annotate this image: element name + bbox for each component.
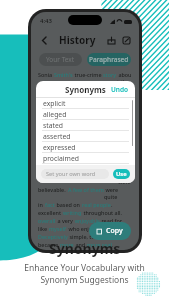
staticText: snapper bbox=[61, 86, 83, 93]
staticText: Undo bbox=[111, 85, 129, 94]
staticText: explicit bbox=[43, 99, 66, 108]
staticText: throughout all. bbox=[82, 209, 123, 216]
staticText: Paraphrased bbox=[89, 55, 129, 64]
staticText: A few of them bbox=[68, 186, 104, 193]
button[interactable]: Back bbox=[38, 34, 50, 46]
staticText: , a large turtle species bbox=[83, 86, 132, 100]
staticText: Copy bbox=[106, 226, 123, 236]
button[interactable]: expressed bbox=[36, 142, 135, 153]
staticText: hunted bbox=[122, 109, 132, 130]
staticText: It was bbox=[57, 147, 73, 154]
staticText: simple, the bbox=[68, 163, 100, 170]
staticText: like bbox=[38, 225, 49, 232]
staticText: simple, the bbox=[68, 233, 100, 240]
button[interactable]: Use bbox=[113, 169, 130, 179]
staticText: Interesting bbox=[38, 155, 67, 162]
staticText: History bbox=[59, 33, 96, 47]
staticText: Times. bbox=[38, 147, 57, 154]
staticText: Deceptively bbox=[38, 233, 68, 240]
staticText: compelling bbox=[38, 171, 67, 178]
button[interactable]: alleged bbox=[36, 109, 135, 120]
staticText: more real bbox=[87, 241, 112, 248]
staticText: a very bbox=[56, 217, 75, 224]
button[interactable]: Export bbox=[105, 34, 117, 46]
staticText: an interesting read. bbox=[73, 147, 125, 154]
staticText: Deceptively bbox=[38, 163, 68, 170]
staticText: alleged bbox=[43, 110, 67, 119]
staticText: Enhance Your Vocabulary with Synonym Sug… bbox=[24, 262, 145, 286]
staticText: based on bbox=[55, 201, 82, 208]
staticText: and the bbox=[67, 171, 90, 178]
staticText: . bbox=[111, 201, 113, 208]
staticText: in bbox=[38, 201, 45, 208]
button[interactable]: Share bbox=[120, 34, 132, 46]
staticText: became bbox=[38, 241, 60, 248]
staticText: proclaimed bbox=[43, 154, 79, 163]
staticText: who enjoys this genre. bbox=[67, 225, 127, 232]
button[interactable]: stated bbox=[36, 120, 135, 131]
staticText: more bbox=[60, 241, 74, 248]
staticText: Smith's bbox=[54, 71, 73, 78]
button[interactable]: Undo bbox=[111, 85, 129, 94]
staticText: . bbox=[112, 241, 114, 248]
staticText: myself bbox=[49, 225, 67, 232]
staticText: was published bbox=[50, 139, 87, 146]
staticText: were bbox=[118, 171, 132, 185]
staticText: real people bbox=[82, 201, 111, 208]
staticText: Set your own word bbox=[46, 170, 96, 178]
button[interactable]: explicit bbox=[36, 98, 135, 109]
staticText: expressed bbox=[43, 143, 76, 152]
button[interactable]: asserted bbox=[36, 131, 135, 142]
staticText: that bbox=[38, 139, 50, 146]
staticText: enjoyable bbox=[75, 217, 100, 224]
staticText: were quite bbox=[104, 186, 132, 200]
staticText: Sonia bbox=[38, 71, 54, 78]
button[interactable]: Paraphrased bbox=[87, 53, 131, 66]
staticText: was bbox=[114, 163, 126, 170]
staticText: about the bbox=[117, 71, 132, 85]
staticText: Use bbox=[116, 170, 127, 178]
button[interactable]: Your Text bbox=[39, 53, 82, 66]
staticText: was the subject of bbox=[52, 131, 102, 138]
staticText: true-crime bbox=[73, 71, 103, 78]
staticText: read for bbox=[100, 217, 122, 224]
staticText: found in the southeast bbox=[38, 101, 98, 108]
staticText: excellent bbox=[38, 209, 63, 216]
button[interactable]: Copy bbox=[89, 222, 131, 240]
staticText: Your Text bbox=[46, 55, 75, 64]
staticText: that bbox=[67, 155, 81, 162]
staticText: and bbox=[74, 241, 87, 248]
staticText: Synonyms bbox=[65, 84, 106, 95]
staticText: asserted bbox=[43, 132, 71, 141]
staticText: them bbox=[38, 131, 52, 138]
staticText: fact bbox=[45, 201, 55, 208]
button[interactable]: proclaimed bbox=[36, 153, 135, 164]
staticText: overall bbox=[38, 217, 56, 224]
staticText: story bbox=[103, 71, 117, 78]
staticText: believable. bbox=[38, 186, 68, 193]
staticText: Louisiana family of hunters who bbox=[38, 109, 122, 116]
staticText: story bbox=[100, 163, 114, 170]
staticText: 4:43 bbox=[40, 17, 52, 25]
staticText: characters bbox=[90, 171, 118, 178]
staticText: writing bbox=[63, 209, 82, 216]
staticText: characters bbox=[100, 233, 128, 240]
button[interactable]: Set your own word bbox=[41, 169, 109, 179]
staticText: in the New York bbox=[87, 139, 129, 146]
staticText: Synonyms bbox=[49, 239, 121, 258]
staticText: stated bbox=[43, 121, 63, 130]
